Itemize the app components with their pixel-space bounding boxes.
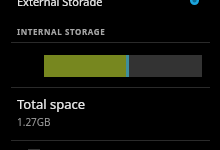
button[interactable]: Total space (0, 88, 220, 135)
staticText: 1.27GB (17, 115, 51, 129)
button[interactable] (44, 55, 202, 77)
staticText: External Storage (17, 0, 103, 6)
staticText: INTERNAL STORAGE (17, 26, 106, 37)
button[interactable]: Available (0, 149, 220, 150)
button[interactable]: External Storage (0, 0, 220, 12)
staticText: Total space (17, 95, 85, 113)
